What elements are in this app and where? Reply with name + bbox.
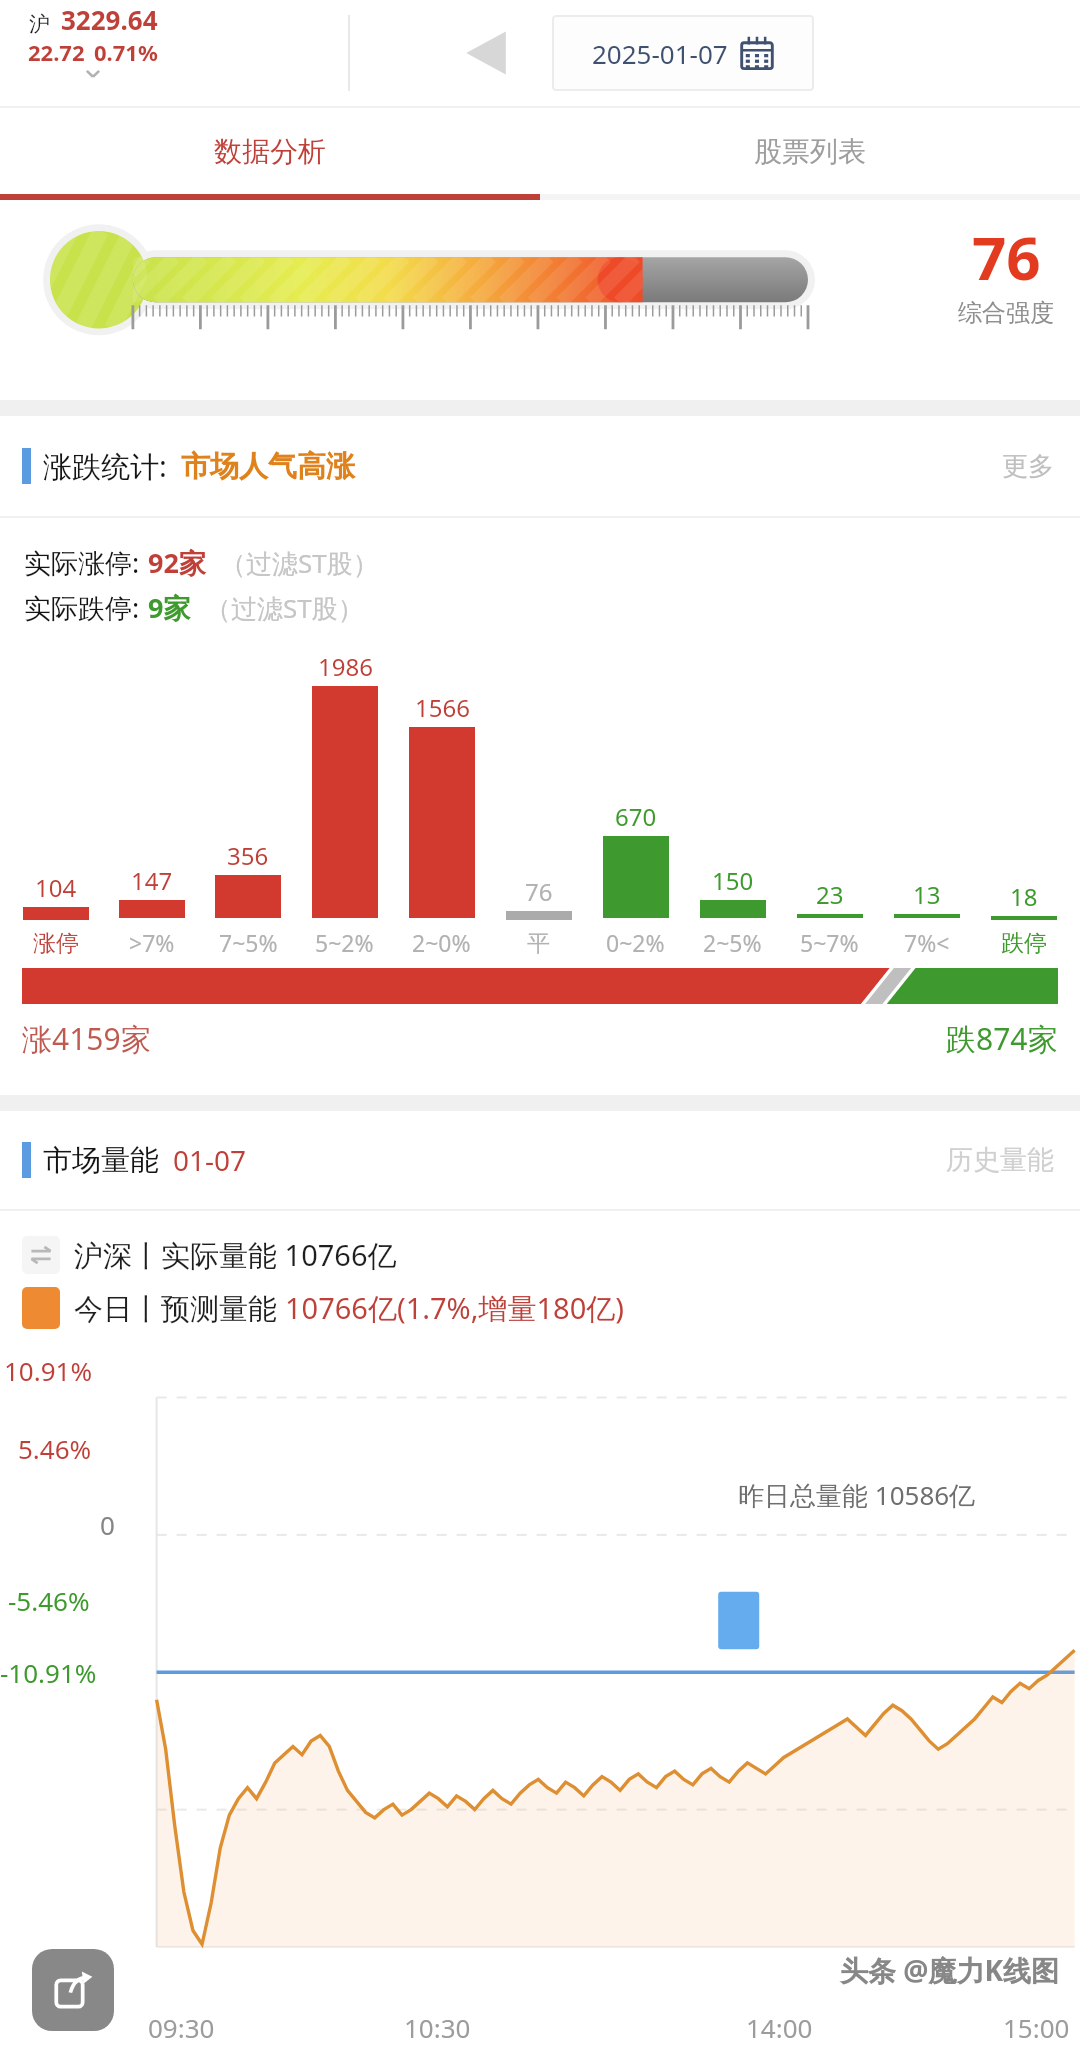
staticText: 150 <box>712 864 754 897</box>
staticText: 09:30 <box>148 2010 215 2045</box>
staticText: 01-07 <box>173 1141 247 1179</box>
staticText: 涨4159家 <box>22 1018 151 1059</box>
staticText: 3229.64 <box>61 2 158 37</box>
staticText: 10766亿(1.7%,增量180亿) <box>285 1288 624 1328</box>
staticText: 平 <box>527 929 550 958</box>
staticText: 头条 @魔力K线图 <box>840 1951 1060 1989</box>
button[interactable]: 18 <box>975 652 1072 958</box>
staticText: 0~2% <box>606 927 665 958</box>
staticText: 10:30 <box>404 2010 471 2045</box>
staticText: 2025-01-07 <box>592 36 728 71</box>
button[interactable]: 76 <box>490 652 587 958</box>
staticText: 市场量能 <box>43 1142 159 1179</box>
staticText: 历史量能 <box>946 1143 1054 1177</box>
staticText: 数据分析 <box>214 134 326 169</box>
staticText: 实际涨停: <box>24 544 140 581</box>
staticText: 9家 <box>148 589 191 626</box>
staticText: 5~2% <box>315 927 374 958</box>
staticText: 0 <box>100 1507 115 1542</box>
button[interactable]: 670 <box>587 650 684 958</box>
staticText: 跌874家 <box>946 1018 1058 1059</box>
staticText: >7% <box>129 927 175 958</box>
staticText: 实际跌停: <box>24 589 140 626</box>
staticText: 14:00 <box>746 2010 813 2045</box>
button[interactable]: 356 <box>200 650 296 958</box>
staticText: 18 <box>1010 880 1038 913</box>
staticText: 跌停 <box>1001 929 1047 958</box>
staticText: 昨日总量能 10586亿 <box>738 1477 976 1513</box>
staticText: 5.46% <box>18 1431 92 1466</box>
staticText: （过滤ST股） <box>220 545 379 581</box>
button[interactable]: Share <box>32 1949 114 2031</box>
staticText: 0.71% <box>94 37 158 67</box>
staticText: 2~0% <box>412 927 471 958</box>
staticText: （过滤ST股） <box>205 590 364 626</box>
staticText: 356 <box>227 839 269 872</box>
staticText: 147 <box>131 864 173 897</box>
button[interactable]: 2025-01-07 <box>552 15 814 91</box>
button[interactable]: 13 <box>878 650 975 958</box>
staticText: 15:00 <box>1003 2010 1070 2045</box>
button[interactable]: 沪 <box>28 2 158 81</box>
button[interactable]: 涨跌统计: <box>0 416 1080 516</box>
staticText: 22.72 <box>28 37 85 67</box>
staticText: 1566 <box>415 691 470 724</box>
staticText: 涨停 <box>33 929 79 958</box>
button[interactable]: 1566 <box>393 650 490 958</box>
button[interactable]: 150 <box>684 650 781 958</box>
staticText: 92家 <box>148 544 206 581</box>
staticText: -5.46% <box>8 1583 90 1618</box>
button[interactable]: 147 <box>104 650 200 958</box>
staticText: 76 <box>972 216 1041 298</box>
staticText: 更多 <box>1002 450 1054 483</box>
button[interactable]: 23 <box>781 650 878 958</box>
staticText: 综合强度 <box>958 298 1054 328</box>
staticText: 今日丨预测量能 <box>74 1288 285 1328</box>
staticText: 沪 <box>29 11 50 37</box>
button[interactable]: 1986 <box>296 650 393 958</box>
staticText: 1986 <box>318 650 373 683</box>
staticText: 2~5% <box>703 927 762 958</box>
staticText: 104 <box>35 871 77 904</box>
staticText: 7~5% <box>219 927 278 958</box>
button[interactable]: Previous day <box>448 15 524 91</box>
staticText: 5~7% <box>800 927 859 958</box>
staticText: 76 <box>525 875 553 908</box>
staticText: 13 <box>913 878 941 911</box>
button[interactable]: 数据分析 <box>0 108 540 194</box>
staticText: 股票列表 <box>754 134 866 169</box>
button[interactable]: 市场量能 <box>0 1111 1080 1209</box>
staticText: 7%< <box>904 927 950 958</box>
staticText: 沪深丨实际量能 10766亿 <box>74 1235 397 1275</box>
staticText: 市场人气高涨 <box>181 448 355 485</box>
staticText: 670 <box>615 800 657 833</box>
button[interactable]: 104 <box>8 652 104 958</box>
staticText: 涨跌统计: <box>43 446 167 486</box>
staticText: 23 <box>816 878 844 911</box>
button[interactable]: 股票列表 <box>540 108 1080 194</box>
staticText: 10.91% <box>4 1353 93 1388</box>
staticText: -10.91% <box>0 1655 97 1690</box>
